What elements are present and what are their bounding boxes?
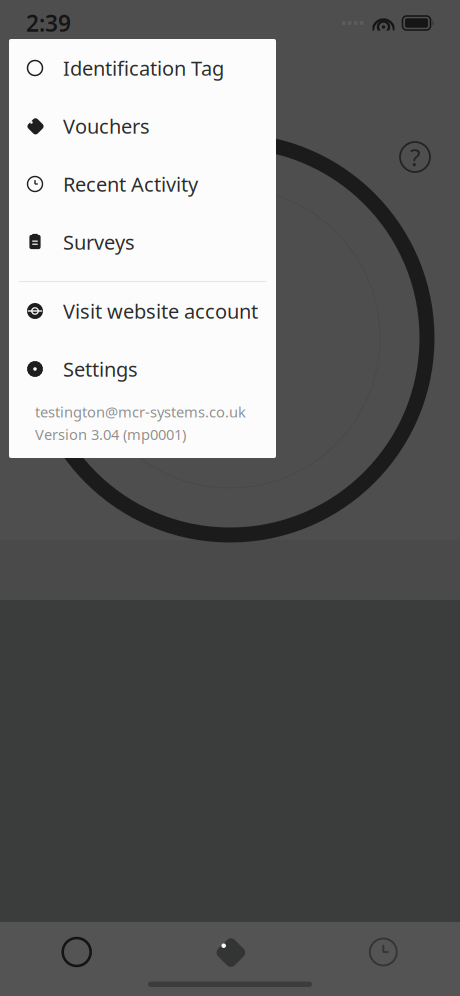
staticText: Visit website account xyxy=(63,298,258,324)
button[interactable]: Help xyxy=(394,136,436,178)
staticText: ? xyxy=(410,141,420,173)
staticText: Vouchers xyxy=(63,113,150,139)
staticText: testington@mcr-systems.co.uk xyxy=(35,402,246,421)
button[interactable]: Identification Tag xyxy=(0,927,153,977)
button[interactable]: Surveys xyxy=(9,213,276,271)
button[interactable]: Visit website account xyxy=(9,282,276,340)
staticText: TAG xyxy=(187,392,273,452)
staticText: Settings xyxy=(63,356,138,382)
button[interactable]: Vouchers xyxy=(9,97,276,155)
button[interactable]: Recent Activity xyxy=(9,155,276,213)
staticText: Identification Tag xyxy=(63,55,224,81)
button[interactable]: Recent Activity xyxy=(307,927,460,977)
staticText: Version 3.04 (mp0001) xyxy=(35,424,186,444)
staticText: ID xyxy=(186,223,273,326)
button[interactable]: Settings xyxy=(9,340,276,398)
button[interactable]: Identification Tag xyxy=(9,39,276,97)
button[interactable]: Vouchers xyxy=(153,927,307,977)
staticText: Surveys xyxy=(63,229,135,255)
staticText: 2:39 xyxy=(26,8,71,38)
staticText: Recent Activity xyxy=(63,171,198,197)
